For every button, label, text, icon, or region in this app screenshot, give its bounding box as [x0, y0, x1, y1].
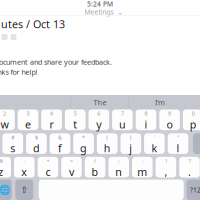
- staticText: 0: [192, 110, 195, 117]
- button[interactable]: 9: [159, 109, 180, 130]
- button[interactable]: +: [38, 157, 58, 177]
- button[interactable]: #: [2, 133, 23, 154]
- button[interactable]: 5: [65, 109, 85, 130]
- staticText: :: [142, 157, 143, 165]
- staticText: n: [115, 165, 122, 179]
- staticText: 2: [3, 110, 6, 117]
- staticText: 8: [144, 110, 147, 117]
- button[interactable]: ;: [108, 157, 129, 177]
- staticText: d: [33, 141, 40, 155]
- button[interactable]: [193, 133, 200, 154]
- staticText: $: [35, 134, 38, 141]
- staticText: r: [50, 117, 54, 132]
- staticText: 9: [168, 110, 171, 117]
- staticText: 7: [121, 110, 124, 117]
- staticText: 4: [50, 110, 53, 117]
- staticText: ": [177, 134, 179, 141]
- staticText: ': [154, 134, 155, 141]
- button[interactable]: (: [97, 133, 117, 154]
- button[interactable]: Format: [10, 34, 16, 40]
- button[interactable]: ?123: [186, 179, 200, 200]
- staticText: .: [188, 165, 191, 179]
- staticText: c: [45, 165, 50, 179]
- button[interactable]: &: [50, 133, 70, 154]
- button[interactable]: =: [61, 157, 82, 177]
- staticText: -: [23, 157, 25, 165]
- staticText: m: [137, 165, 147, 179]
- staticText: 5: [74, 110, 77, 117]
- staticText: #: [11, 134, 14, 141]
- button[interactable]: 8: [136, 109, 156, 130]
- button[interactable]: %: [0, 157, 11, 177]
- button[interactable]: ⇧: [15, 179, 33, 200]
- button[interactable]: Format: [1, 34, 7, 40]
- button[interactable]: 4: [41, 109, 62, 130]
- button[interactable]: !: [156, 157, 176, 177]
- staticText: ?123: [190, 185, 200, 194]
- staticText: %: [0, 157, 3, 165]
- staticText: ⇧: [20, 184, 28, 195]
- button[interactable]: ?: [179, 157, 200, 177]
- staticText: w: [0, 117, 8, 132]
- staticText: ,: [164, 165, 167, 179]
- staticText: !: [165, 157, 166, 165]
- staticText: +: [46, 157, 49, 165]
- staticText: h: [104, 141, 111, 155]
- staticText: o: [167, 117, 173, 132]
- staticText: /: [94, 157, 96, 165]
- staticText: x: [21, 165, 27, 179]
- staticText: 3: [26, 110, 29, 117]
- staticText: ?: [188, 157, 190, 165]
- button[interactable]: :: [132, 157, 153, 177]
- staticText: f: [58, 141, 62, 155]
- staticText: =: [70, 157, 73, 165]
- staticText: &: [58, 134, 62, 141]
- button[interactable]: ": [168, 133, 188, 154]
- button[interactable]: 🌐: [0, 179, 12, 200]
- button[interactable]: 3: [18, 109, 38, 130]
- button[interactable]: -: [14, 157, 35, 177]
- staticText: p: [190, 117, 197, 132]
- button[interactable]: 2: [0, 109, 15, 130]
- staticText: ): [130, 134, 132, 141]
- button[interactable]: ': [144, 133, 165, 154]
- button[interactable]: *: [73, 133, 94, 154]
- staticText: 🌐: [0, 184, 11, 195]
- staticText: *: [82, 134, 85, 141]
- staticText: e: [25, 117, 31, 132]
- staticText: t: [73, 117, 77, 132]
- staticText: is document and share your feedback.: [0, 57, 112, 67]
- staticText: I'm: [155, 97, 165, 107]
- staticText: j: [129, 141, 132, 155]
- staticText: y: [96, 117, 101, 132]
- staticText: The: [93, 97, 106, 107]
- button[interactable]: ): [120, 133, 141, 154]
- staticText: l: [176, 141, 179, 155]
- staticText: 5:24 PM: [87, 0, 113, 9]
- staticText: z: [0, 165, 3, 179]
- staticText: inutes / Oct 13: [0, 17, 65, 31]
- staticText: g: [80, 141, 87, 155]
- staticText: (: [106, 134, 108, 141]
- staticText: v: [69, 165, 74, 179]
- staticText: Meetings ⌄: [84, 7, 123, 17]
- button[interactable]: 0: [183, 109, 200, 130]
- staticText: s: [10, 141, 15, 155]
- staticText: b: [92, 165, 99, 179]
- staticText: i: [144, 117, 147, 132]
- staticText: 6: [97, 110, 100, 117]
- staticText: k: [151, 141, 157, 155]
- button[interactable]: 7: [112, 109, 133, 130]
- button[interactable]: /: [85, 157, 105, 177]
- staticText: u: [119, 117, 126, 132]
- button[interactable]: 6: [88, 109, 109, 130]
- staticText: ;: [118, 157, 119, 165]
- staticText: Thanks for help!: [0, 67, 37, 77]
- button[interactable]: $: [26, 133, 47, 154]
